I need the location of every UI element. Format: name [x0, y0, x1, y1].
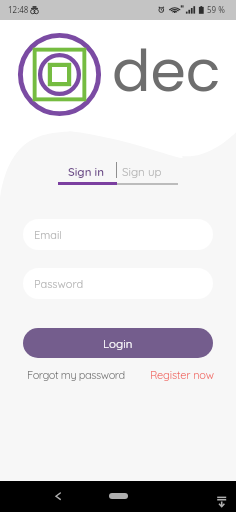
staticText: Password [34, 277, 84, 291]
button[interactable]: Back [50, 487, 67, 506]
staticText: Sign in [68, 164, 105, 178]
staticText: Forgot my password [27, 368, 125, 382]
button[interactable]: Forgot my password [27, 368, 125, 382]
button[interactable]: Sign up [120, 162, 164, 180]
button[interactable]: Password [23, 268, 213, 299]
button[interactable]: Register now [150, 368, 214, 382]
staticText: Sign up [122, 164, 162, 178]
staticText: Register now [150, 368, 214, 382]
staticText: dec [112, 31, 221, 111]
staticText: Login [103, 336, 133, 350]
staticText: Email [34, 228, 62, 242]
button[interactable]: Sign in [62, 162, 110, 180]
button[interactable]: Email [23, 219, 213, 250]
button[interactable]: Login [23, 328, 213, 358]
staticText: 12:48 [8, 4, 29, 15]
button[interactable]: Hide keyboard [213, 487, 231, 506]
button[interactable]: Home [109, 493, 128, 499]
staticText: 59 % [207, 4, 225, 15]
